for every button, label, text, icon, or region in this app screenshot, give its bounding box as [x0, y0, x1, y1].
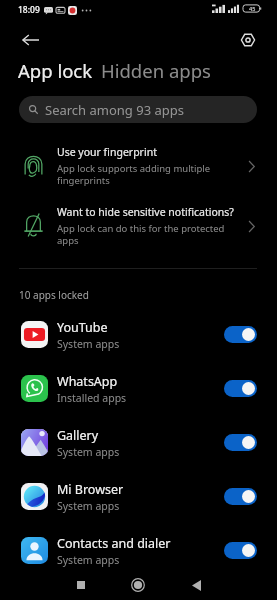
button[interactable] [224, 326, 257, 343]
button[interactable]: App lock [18, 58, 93, 83]
button[interactable]: Mi Browser [0, 475, 277, 521]
staticText: 10 apps locked [19, 288, 89, 302]
staticText: WhatsApp [57, 373, 118, 390]
button[interactable]: Search among 93 apps [19, 96, 257, 123]
staticText: Gallery [57, 427, 99, 444]
staticText: Mi Browser [57, 481, 124, 498]
staticText: 45 [249, 5, 256, 12]
staticText: Use your fingerprint [57, 145, 157, 159]
staticText: System apps [57, 499, 120, 513]
staticText: System apps [57, 337, 120, 351]
button[interactable]: Back [16, 25, 45, 54]
button[interactable]: Settings [233, 25, 262, 54]
staticText: System apps [57, 553, 120, 567]
button[interactable]: Back [181, 570, 211, 600]
button[interactable]: Home [123, 570, 153, 600]
staticText: Want to hide sensitive notifications? [57, 205, 234, 219]
button[interactable] [224, 380, 257, 397]
button[interactable]: Gallery [0, 421, 277, 467]
button[interactable]: WhatsApp [0, 367, 277, 413]
staticText: App lock supports adding multiple finger… [57, 162, 211, 186]
button[interactable]: Contacts and dialer [0, 529, 277, 575]
button[interactable]: Recents [66, 570, 96, 600]
staticText: Search among 93 apps [45, 101, 185, 119]
staticText: 18:09 [18, 4, 40, 16]
staticText: App lock can do this for the protected a… [57, 222, 225, 246]
button[interactable]: Want to hide sensitive notifications? [0, 202, 277, 260]
button[interactable] [224, 488, 257, 505]
button[interactable]: Use your fingerprint [0, 142, 277, 200]
staticText: YouTube [57, 319, 108, 336]
button[interactable]: Hidden apps [101, 58, 211, 83]
staticText: System apps [57, 445, 120, 459]
button[interactable] [224, 434, 257, 451]
staticText: Contacts and dialer [57, 535, 171, 552]
button[interactable]: YouTube [0, 313, 277, 359]
button[interactable] [224, 542, 257, 559]
staticText: Installed apps [57, 391, 127, 405]
